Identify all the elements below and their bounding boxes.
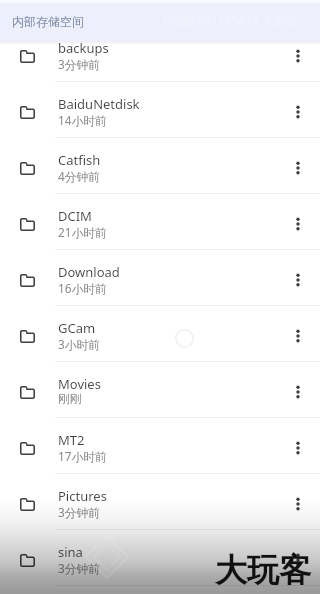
staticText: sina (58, 543, 83, 561)
staticText: 17小时前 (58, 448, 107, 464)
button[interactable]: More options (278, 82, 320, 138)
button[interactable]: Download (0, 250, 320, 306)
button[interactable]: GCam (0, 306, 320, 362)
staticText: 4分钟前 (58, 168, 101, 184)
staticText: 刚刚 (58, 392, 82, 407)
staticText: Pictures (58, 487, 107, 505)
button[interactable]: More options (278, 250, 320, 306)
button[interactable]: Pictures (0, 474, 320, 530)
button[interactable]: More options (278, 194, 320, 250)
button[interactable]: Movies (0, 362, 320, 418)
staticText: Movies (58, 375, 101, 393)
button[interactable]: Catfish (0, 138, 320, 194)
staticText: DCIM (58, 207, 92, 225)
button[interactable]: backups (0, 26, 320, 82)
staticText: backups (58, 39, 109, 57)
button[interactable]: More options (278, 26, 320, 82)
button[interactable]: DCIM (0, 194, 320, 250)
staticText: Download (58, 263, 120, 281)
staticText: GCam (58, 319, 96, 337)
button[interactable]: MT2 (0, 418, 320, 474)
staticText: 内部存储空间 (12, 14, 84, 29)
staticText: 3分钟前 (58, 560, 101, 576)
button[interactable]: More options (278, 418, 320, 474)
staticText: 3分钟前 (58, 504, 101, 520)
staticText: Catfish (58, 151, 101, 169)
button[interactable]: More options (278, 138, 320, 194)
button[interactable]: More options (278, 306, 320, 362)
staticText: 14小时前 (58, 112, 107, 128)
button[interactable]: sina (0, 530, 320, 586)
staticText: 3分钟前 (58, 56, 101, 72)
staticText: 16小时前 (58, 280, 107, 296)
staticText: MT2 (58, 431, 85, 449)
staticText: 3小时前 (58, 336, 101, 352)
button[interactable]: More options (278, 530, 320, 586)
staticText: 21小时前 (58, 224, 107, 240)
button[interactable]: More options (278, 474, 320, 530)
button[interactable]: BaiduNetdisk (0, 82, 320, 138)
staticText: 大玩客 (215, 550, 311, 590)
button[interactable]: More options (278, 362, 320, 418)
staticText: BaiduNetdisk (58, 95, 140, 113)
